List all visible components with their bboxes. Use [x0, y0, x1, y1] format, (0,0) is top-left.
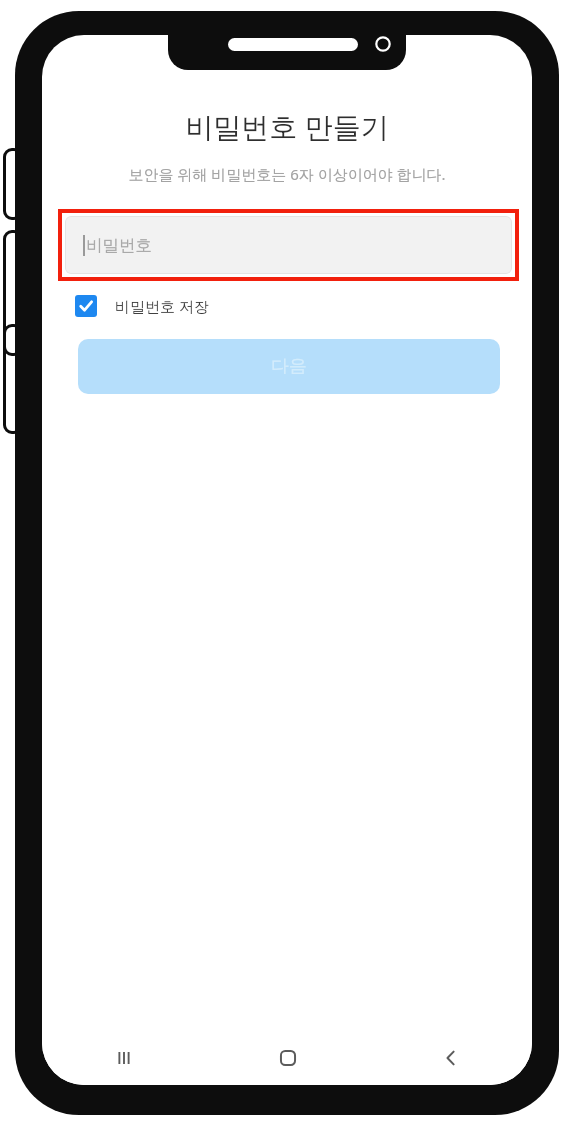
button[interactable]: Back: [369, 1031, 532, 1085]
button[interactable]: Home: [206, 1031, 369, 1085]
staticText: 보안을 위해 비밀번호는 6자 이상이어야 합니다.: [42, 164, 532, 184]
button[interactable]: 비밀번호: [65, 216, 512, 274]
button[interactable]: 비밀번호 저장: [75, 295, 209, 317]
staticText: 비밀번호: [86, 235, 152, 256]
button[interactable]: 다음: [78, 339, 500, 394]
staticText: 비밀번호 만들기: [42, 107, 532, 145]
staticText: 다음: [271, 355, 307, 378]
button[interactable]: Recents: [42, 1031, 206, 1085]
staticText: 비밀번호 저장: [115, 296, 209, 316]
